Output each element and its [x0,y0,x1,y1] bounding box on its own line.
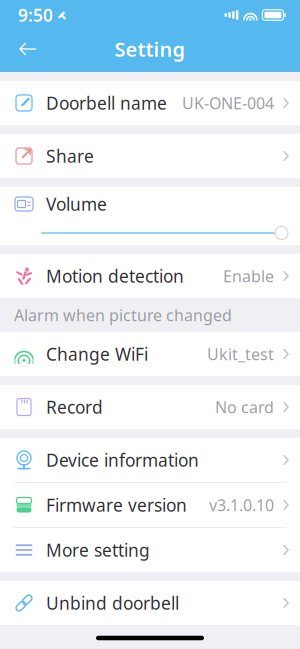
staticText: Alarm when picture changed [14,304,232,326]
staticText: UK-ONE-004 [182,92,274,114]
staticText: Unbind doorbell [46,591,179,614]
staticText: Enable [223,265,274,287]
staticText: Device information [46,448,199,471]
staticText: 9:50 [18,3,53,26]
staticText: Volume [46,192,107,215]
button[interactable]: Record [0,385,300,429]
staticText: Change WiFi [46,342,148,365]
staticText: Doorbell name [46,91,167,114]
staticText: No card [215,396,274,418]
staticText: Firmware version [46,493,187,516]
staticText: Record [46,395,103,418]
button[interactable]: Back [8,31,48,67]
button[interactable]: Unbind doorbell [0,581,300,625]
button[interactable]: More setting [0,528,300,572]
staticText: Motion detection [46,264,184,287]
staticText: Ukit_test [207,343,274,365]
button[interactable]: Doorbell name [0,81,300,125]
button[interactable]: Change WiFi [0,332,300,376]
staticText: Setting [114,36,185,62]
button[interactable]: Motion detection [0,254,300,298]
staticText: v3.1.0.10 [209,494,274,516]
staticText: Share [46,144,94,167]
button[interactable]: Firmware version [0,483,300,527]
button[interactable]: Share [0,134,300,178]
button[interactable]: Device information [0,438,300,482]
staticText: More setting [46,538,150,561]
